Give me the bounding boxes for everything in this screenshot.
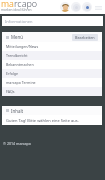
staticText: © 2014 marcapo: [3, 141, 31, 146]
button[interactable]: marcapo Termine: [2, 78, 102, 87]
button[interactable]: Bearbeiten: [75, 35, 95, 40]
staticText: Menü: [11, 34, 23, 40]
button[interactable]: Trendbericht: [2, 51, 102, 60]
staticText: Mitteilungen/News: [6, 44, 39, 49]
staticText: marken ideal führen: [1, 8, 32, 12]
staticText: rcapo: [14, 0, 38, 9]
staticText: Inhalt: [11, 108, 24, 114]
staticText: Guten Tag! Bitte wählen eine Seite aus.: [6, 118, 79, 123]
button[interactable]: FAQs: [2, 87, 102, 96]
button[interactable]: Bekanntmachen: [2, 60, 102, 69]
staticText: FAQs: [6, 89, 15, 94]
staticText: Bekanntmachen: [6, 62, 34, 67]
button[interactable]: Mitteilungen/News: [2, 42, 102, 51]
staticText: Trendbericht: [6, 53, 28, 58]
button[interactable]: Profile: [60, 2, 70, 12]
staticText: ma: [1, 0, 14, 9]
button[interactable]: Informationen: [2, 16, 103, 26]
staticText: Erfolge: [6, 71, 19, 76]
button[interactable]: Language: [82, 2, 92, 12]
staticText: Bearbeiten: [75, 35, 95, 40]
staticText: marcapo Termine: [6, 80, 36, 85]
button[interactable]: Menu: [93, 2, 104, 13]
staticText: Informationen: [5, 19, 33, 24]
button[interactable]: Erfolge: [2, 69, 102, 78]
button[interactable]: Settings: [71, 2, 81, 12]
